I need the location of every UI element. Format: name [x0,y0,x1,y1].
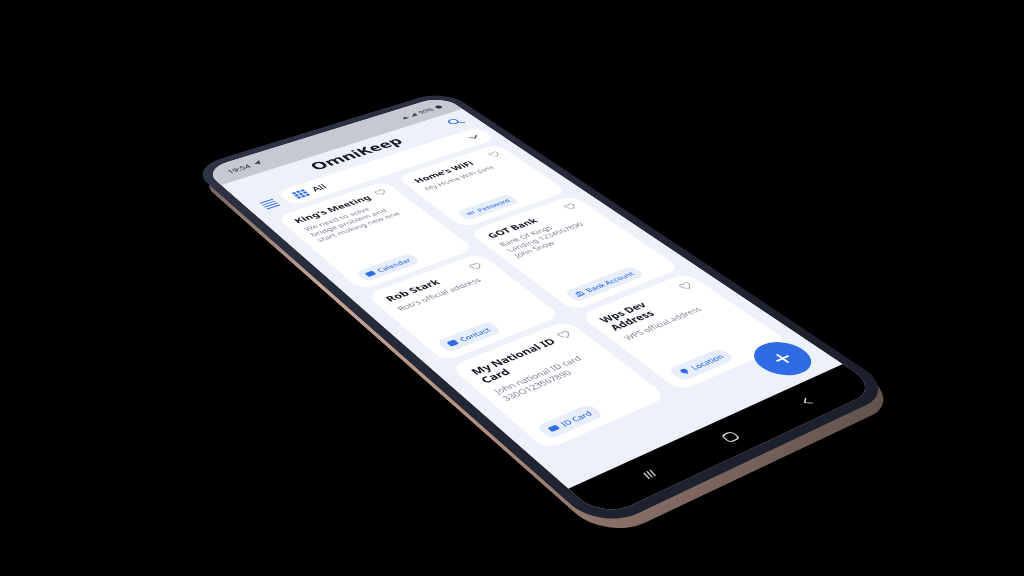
button[interactable]: Home's WiFi [188,146,342,288]
button[interactable]: GOT Bank [188,297,342,491]
staticText: My Home WiFi pass [202,182,303,197]
button[interactable]: All [48,96,348,136]
staticText: Home's WiFi [202,158,287,177]
